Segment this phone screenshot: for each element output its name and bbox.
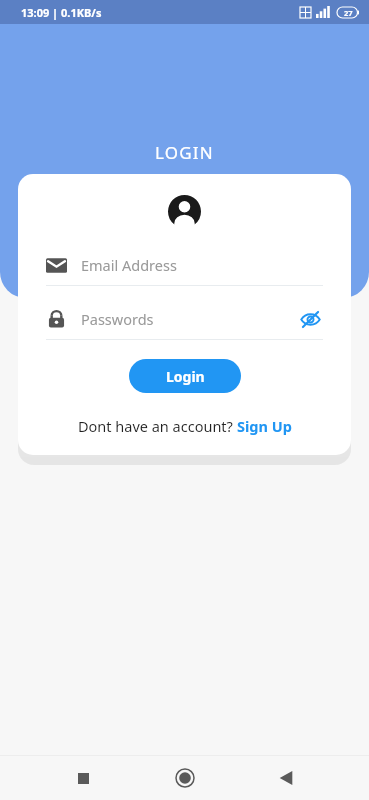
button[interactable]: Sign Up bbox=[237, 416, 292, 436]
button[interactable]: Login bbox=[129, 359, 241, 393]
button[interactable]: Home bbox=[166, 759, 204, 797]
button[interactable]: Passwords bbox=[18, 299, 351, 339]
staticText: Passwords bbox=[81, 309, 297, 329]
staticText: 13:09 | 0.1KB/s bbox=[21, 5, 102, 20]
button[interactable]: Recent apps bbox=[64, 759, 102, 797]
button[interactable]: Email Address bbox=[18, 245, 351, 285]
staticText: Login bbox=[166, 367, 205, 386]
staticText: 27 bbox=[344, 8, 353, 18]
staticText: Sign Up bbox=[237, 416, 292, 436]
staticText: Dont have an account? bbox=[78, 416, 237, 436]
staticText: Email Address bbox=[81, 255, 177, 275]
staticText: LOGIN bbox=[155, 141, 214, 164]
button[interactable]: Show password bbox=[297, 306, 323, 332]
button[interactable]: Back bbox=[267, 759, 305, 797]
